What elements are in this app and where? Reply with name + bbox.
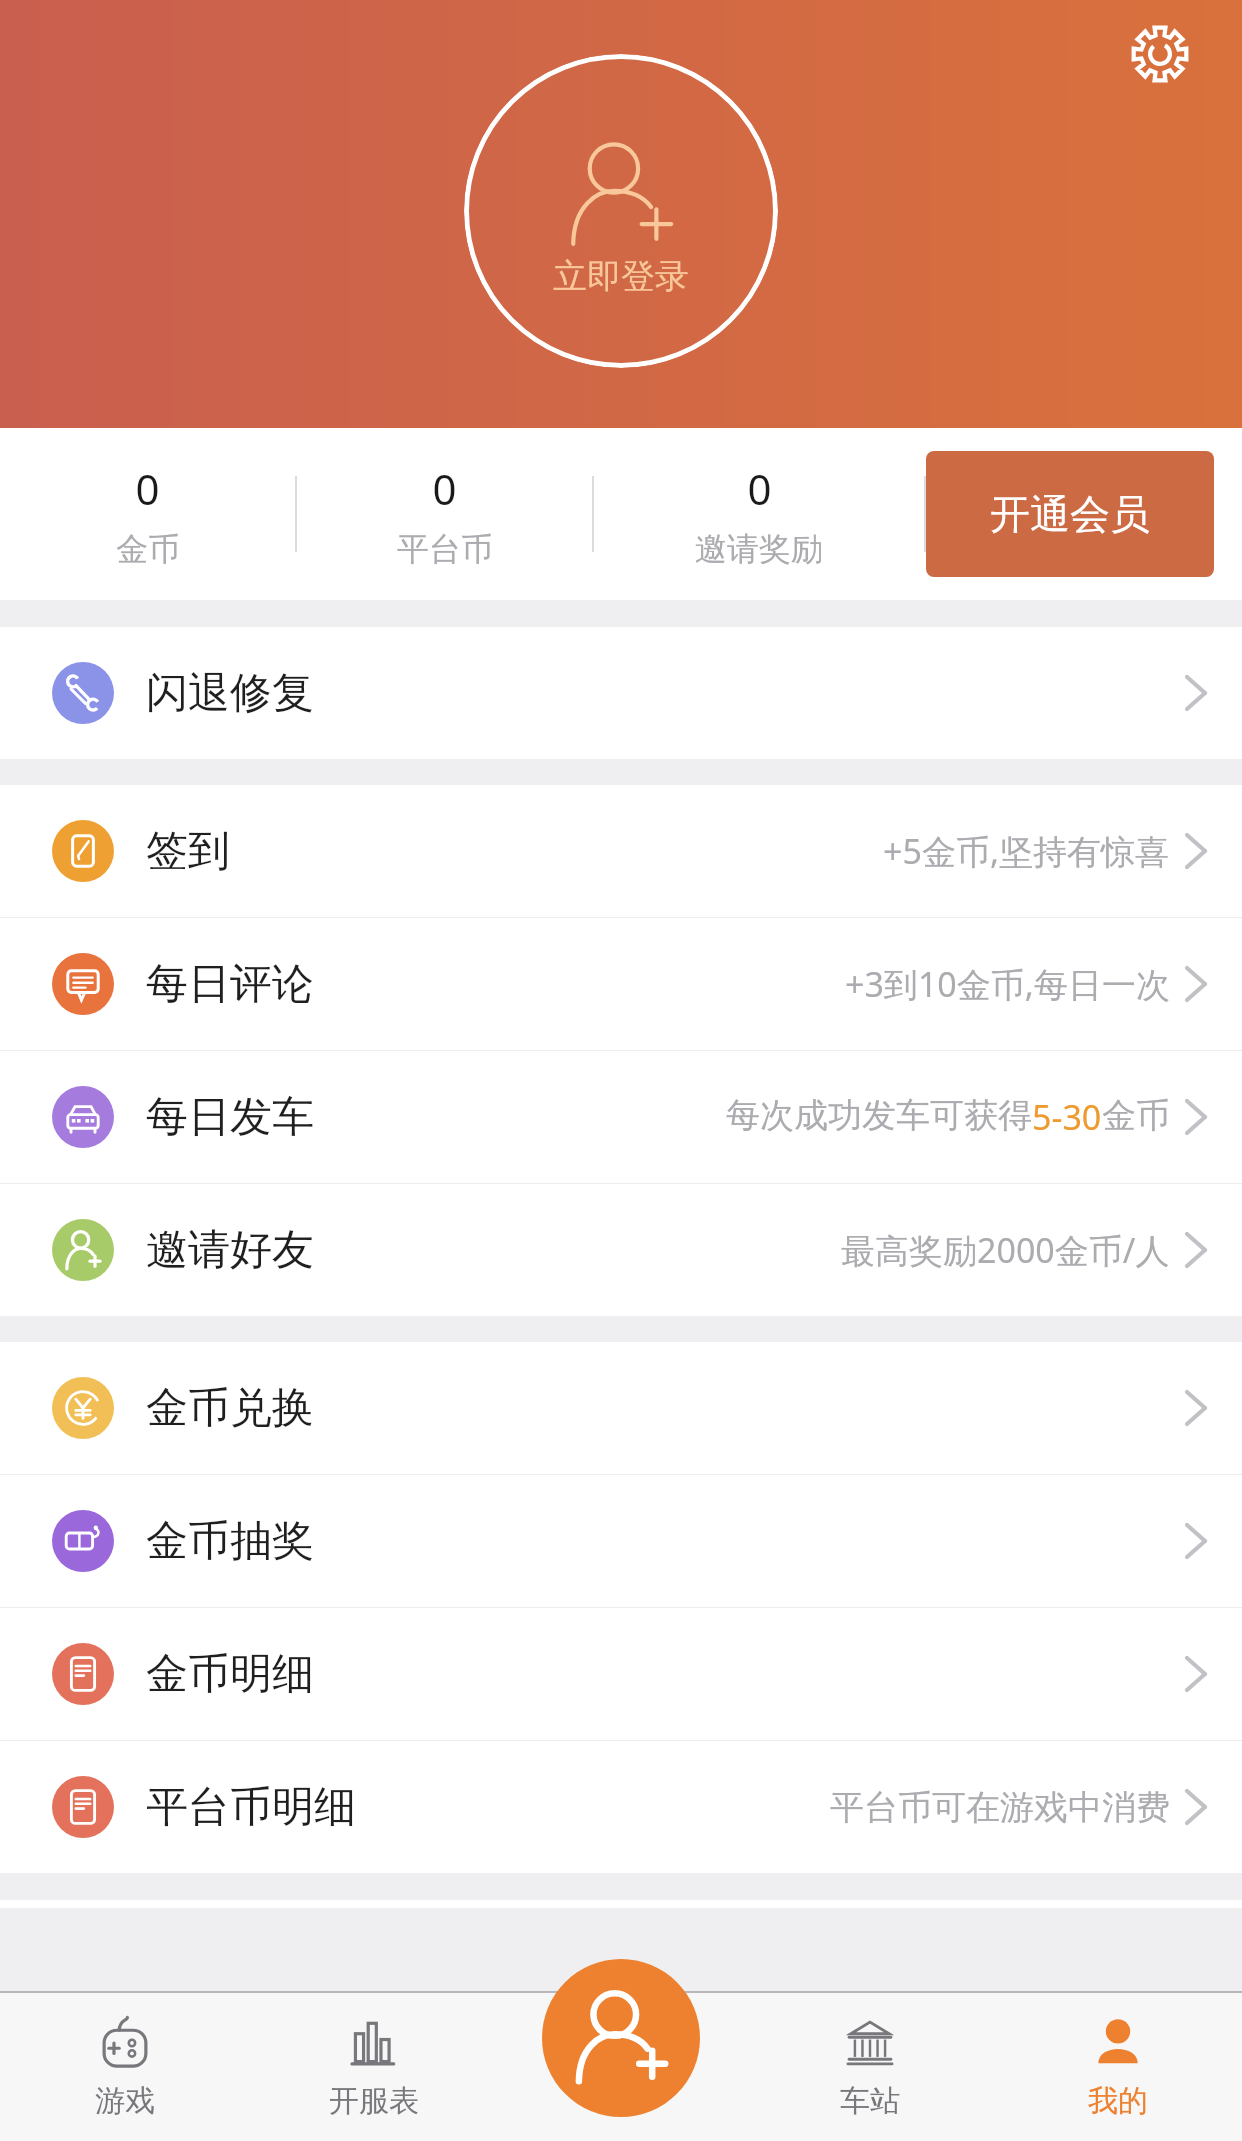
staticText: 闪退修复 bbox=[146, 667, 314, 720]
button[interactable]: 0 bbox=[0, 460, 295, 569]
staticText: 0 bbox=[135, 460, 160, 517]
staticText: 我的 bbox=[1088, 2082, 1148, 2120]
staticText: 金币 bbox=[1102, 1094, 1170, 1137]
staticText: 游戏 bbox=[95, 2082, 155, 2120]
staticText: 平台币可在游戏中消费 bbox=[830, 1786, 1170, 1829]
button[interactable]: 金币抽奖 bbox=[0, 1475, 1242, 1607]
staticText: 开通会员 bbox=[990, 489, 1150, 539]
staticText: 邀请好友 bbox=[146, 1224, 314, 1277]
button[interactable]: 金币兑换 bbox=[0, 1342, 1242, 1474]
button[interactable]: 邀请好友 bbox=[0, 1184, 1242, 1316]
button[interactable]: 每日评论 bbox=[0, 918, 1242, 1050]
button[interactable]: 立即登录 bbox=[464, 54, 778, 368]
staticText: 平台币 bbox=[397, 529, 493, 569]
button[interactable]: 开服表 bbox=[249, 1993, 498, 2141]
button[interactable]: 签到 bbox=[0, 785, 1242, 917]
staticText: 5-30 bbox=[1032, 1094, 1102, 1140]
button[interactable]: 闪退修复 bbox=[0, 627, 1242, 759]
staticText: 金币 bbox=[116, 529, 180, 569]
staticText: 开服表 bbox=[329, 2082, 419, 2120]
button[interactable]: 我的 bbox=[994, 1993, 1242, 2141]
staticText: 0 bbox=[432, 460, 457, 517]
staticText: 立即登录 bbox=[553, 255, 689, 298]
staticText: 签到 bbox=[146, 825, 230, 878]
button[interactable]: 每日发车 bbox=[0, 1051, 1242, 1183]
staticText: 0 bbox=[747, 460, 772, 517]
button[interactable]: 0 bbox=[297, 460, 592, 569]
staticText: 平台币明细 bbox=[146, 1781, 356, 1834]
staticText: 金币抽奖 bbox=[146, 1515, 314, 1568]
button[interactable]: 车站 bbox=[746, 1993, 994, 2141]
staticText: +5金币,坚持有惊喜 bbox=[883, 828, 1170, 874]
staticText: +3到10金币,每日一次 bbox=[845, 961, 1170, 1007]
button[interactable]: 游戏 bbox=[0, 1993, 249, 2141]
button[interactable]: Settings bbox=[1124, 18, 1196, 90]
staticText: 金币明细 bbox=[146, 1648, 314, 1701]
button[interactable]: 0 bbox=[594, 460, 924, 569]
staticText: 每日发车 bbox=[146, 1091, 314, 1144]
button[interactable]: Add account bbox=[542, 1959, 700, 2117]
staticText: 邀请奖励 bbox=[695, 529, 823, 569]
button[interactable]: 开通会员 bbox=[926, 451, 1214, 577]
staticText: 每次成功发车可获得 bbox=[726, 1094, 1032, 1137]
staticText: 金币兑换 bbox=[146, 1382, 314, 1435]
staticText: 车站 bbox=[840, 2082, 900, 2120]
button[interactable]: 金币明细 bbox=[0, 1608, 1242, 1740]
staticText: 每日评论 bbox=[146, 958, 314, 1011]
button[interactable]: 平台币明细 bbox=[0, 1741, 1242, 1873]
staticText: 最高奖励2000金币/人 bbox=[841, 1227, 1170, 1273]
